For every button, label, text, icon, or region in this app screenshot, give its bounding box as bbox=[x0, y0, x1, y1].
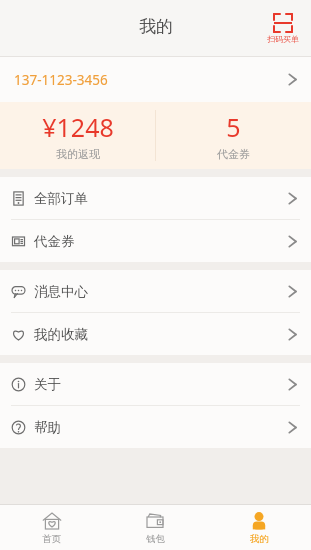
button[interactable]: 代金券 bbox=[0, 220, 311, 262]
staticText: 我的 bbox=[139, 16, 173, 37]
staticText: 扫码买单 bbox=[267, 34, 299, 44]
staticText: 我的收藏 bbox=[34, 326, 88, 343]
staticText: 代金券 bbox=[217, 147, 250, 161]
staticText: 首页 bbox=[42, 533, 61, 545]
button[interactable]: ¥1248 bbox=[0, 102, 155, 169]
staticText: 帮助 bbox=[34, 419, 61, 436]
staticText: 5 bbox=[226, 110, 241, 144]
button[interactable]: 5 bbox=[156, 102, 311, 169]
button[interactable]: 首页 bbox=[0, 505, 103, 550]
button[interactable]: 我的 bbox=[207, 505, 311, 550]
button[interactable]: 全部订单 bbox=[0, 177, 311, 219]
staticText: ¥1248 bbox=[42, 110, 114, 144]
button[interactable]: 137-1123-3456 bbox=[0, 57, 311, 102]
staticText: 我的返现 bbox=[56, 147, 100, 161]
button[interactable]: 扫码买单 bbox=[263, 11, 303, 46]
staticText: 代金券 bbox=[34, 233, 75, 250]
button[interactable]: 消息中心 bbox=[0, 270, 311, 312]
staticText: 关于 bbox=[34, 376, 61, 393]
staticText: 我的 bbox=[250, 533, 269, 545]
button[interactable]: 我的收藏 bbox=[0, 313, 311, 355]
button[interactable]: 帮助 bbox=[0, 406, 311, 448]
staticText: 钱包 bbox=[146, 533, 165, 545]
button[interactable]: 关于 bbox=[0, 363, 311, 405]
staticText: 137-1123-3456 bbox=[14, 71, 108, 89]
staticText: 全部订单 bbox=[34, 190, 88, 207]
button[interactable]: 钱包 bbox=[103, 505, 207, 550]
staticText: 消息中心 bbox=[34, 283, 88, 300]
